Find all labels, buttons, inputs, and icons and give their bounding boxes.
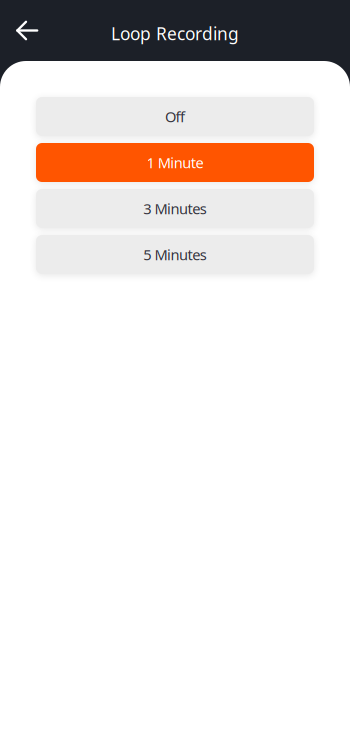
button[interactable]: Back [0, 8, 54, 52]
button[interactable]: 1 Minute [36, 143, 314, 182]
button[interactable]: 3 Minutes [36, 189, 314, 228]
staticText: 3 Minutes [143, 199, 207, 218]
button[interactable]: Off [36, 97, 314, 136]
staticText: Loop Recording [111, 22, 239, 45]
staticText: 5 Minutes [143, 245, 207, 264]
staticText: Off [165, 107, 185, 126]
button[interactable]: 5 Minutes [36, 235, 314, 274]
staticText: 1 Minute [147, 153, 203, 172]
